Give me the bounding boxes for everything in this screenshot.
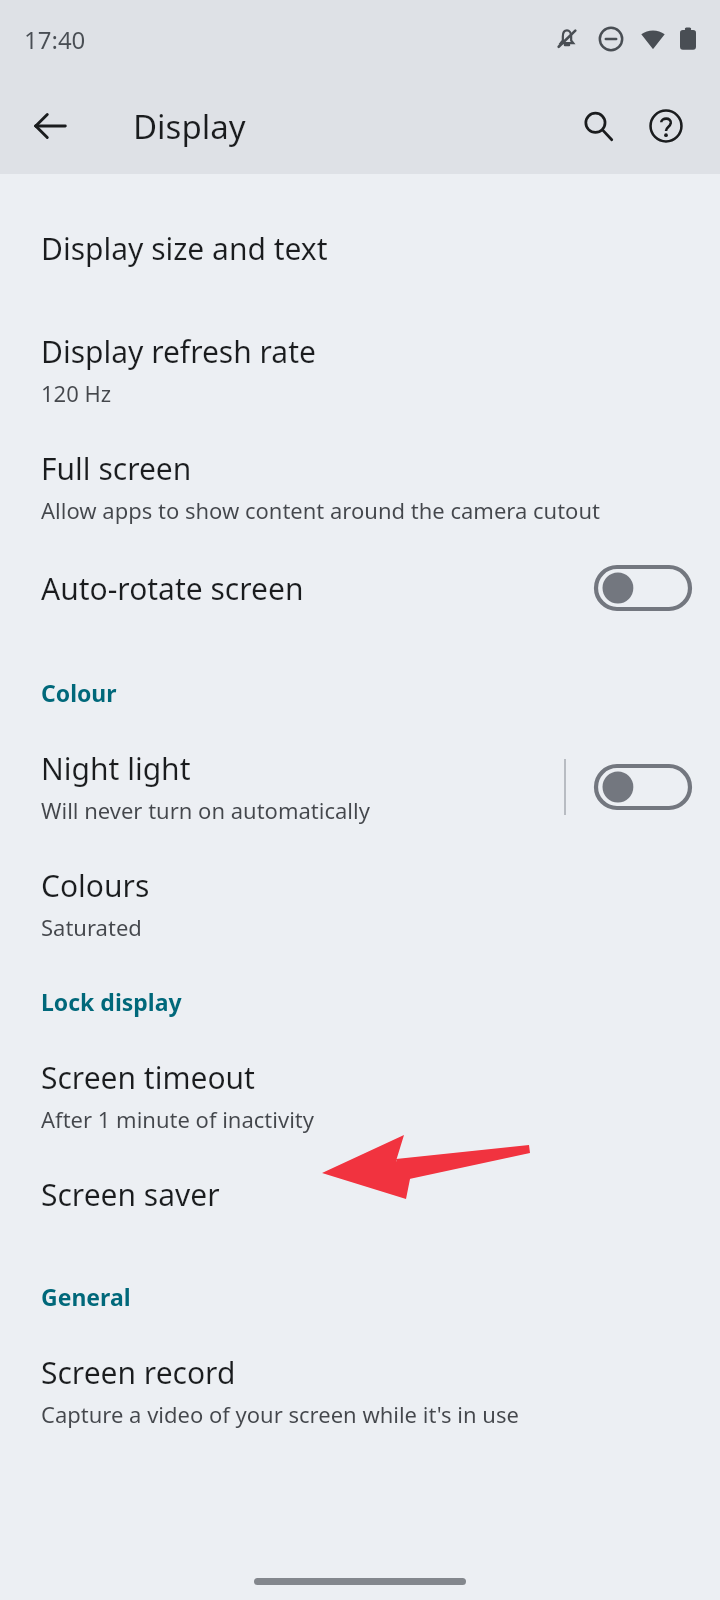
button[interactable]: Search — [564, 92, 632, 160]
staticText: Capture a video of your screen while it'… — [41, 1399, 519, 1429]
staticText: Night light — [41, 748, 191, 789]
staticText: Screen timeout — [41, 1057, 255, 1098]
staticText: Colour — [41, 677, 117, 708]
button[interactable]: Display refresh rate — [0, 321, 720, 438]
button[interactable]: Help — [632, 92, 700, 160]
button[interactable]: Night light — [0, 738, 720, 855]
staticText: Saturated — [41, 912, 142, 942]
button[interactable]: Back — [16, 92, 84, 160]
staticText: Screen saver — [41, 1174, 220, 1215]
staticText: Lock display — [41, 986, 182, 1017]
button[interactable]: Colours — [0, 855, 720, 972]
button[interactable]: Full screen — [0, 438, 720, 555]
staticText: Display refresh rate — [41, 331, 316, 372]
staticText: 17:40 — [24, 23, 86, 56]
button[interactable]: Screen record — [0, 1342, 720, 1459]
staticText: General — [41, 1281, 131, 1312]
button[interactable]: Screen timeout — [0, 1047, 720, 1164]
staticText: Allow apps to show content around the ca… — [41, 495, 600, 525]
button[interactable]: Screen saver — [0, 1164, 720, 1267]
button[interactable]: Display size and text — [0, 218, 720, 321]
button[interactable]: Auto-rotate screen — [0, 555, 720, 663]
button[interactable]: Toggle — [594, 764, 692, 810]
button[interactable]: Toggle — [594, 565, 692, 611]
staticText: Will never turn on automatically — [41, 795, 370, 825]
staticText: After 1 minute of inactivity — [41, 1104, 314, 1134]
staticText: Screen record — [41, 1352, 236, 1393]
staticText: Display size and text — [41, 228, 328, 269]
staticText: Auto-rotate screen — [41, 568, 304, 609]
staticText: Full screen — [41, 448, 192, 489]
staticText: Display — [133, 104, 246, 149]
staticText: 120 Hz — [41, 378, 112, 408]
staticText: Colours — [41, 865, 150, 906]
